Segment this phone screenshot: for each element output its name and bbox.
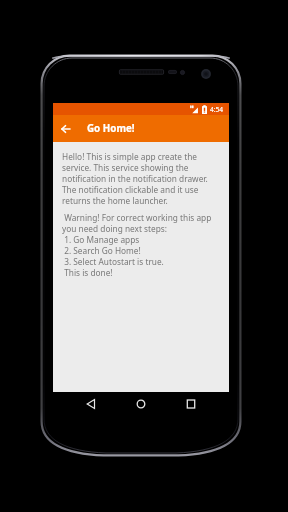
staticText: 4:54	[210, 105, 224, 114]
staticText: Go Home!	[87, 122, 135, 135]
staticText: Hello! This is simple app create the ser…	[62, 151, 221, 206]
button[interactable]: Home	[129, 392, 153, 416]
staticText: Warning! For correct working this app yo…	[62, 212, 221, 278]
button[interactable]: Navigate up	[53, 115, 79, 142]
button[interactable]: Recent apps	[179, 392, 203, 416]
button[interactable]: Back	[79, 392, 103, 416]
